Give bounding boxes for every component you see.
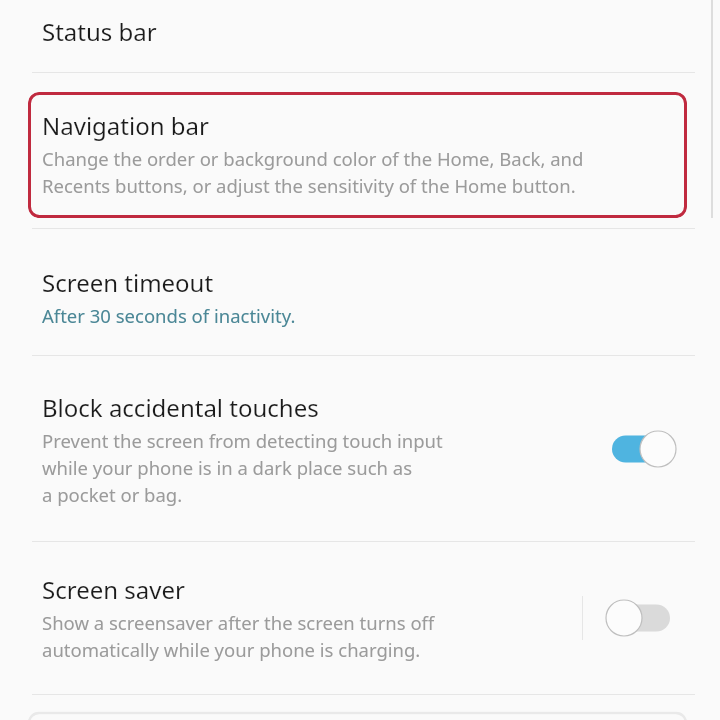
button[interactable]: Navigation bar xyxy=(28,92,687,218)
staticText: Change the order or background color of … xyxy=(42,146,584,199)
button[interactable]: Block accidental touches xyxy=(0,377,720,537)
staticText: After 30 seconds of inactivity. xyxy=(42,303,296,328)
button[interactable]: Screen saver xyxy=(0,562,720,694)
staticText: Prevent the screen from detecting touch … xyxy=(42,428,443,508)
button[interactable]: Screen timeout xyxy=(0,250,720,355)
button[interactable]: Block accidental touches xyxy=(595,419,691,479)
staticText: Navigation bar xyxy=(42,109,209,142)
staticText: Status bar xyxy=(42,15,157,48)
staticText: Show a screensaver after the screen turn… xyxy=(42,610,435,663)
button[interactable]: Status bar xyxy=(0,0,720,72)
staticText: Screen timeout xyxy=(42,266,214,299)
button[interactable] xyxy=(28,712,687,720)
staticText: Screen saver xyxy=(42,573,185,606)
button[interactable]: Screen saver xyxy=(591,588,687,648)
staticText: Block accidental touches xyxy=(42,391,319,424)
